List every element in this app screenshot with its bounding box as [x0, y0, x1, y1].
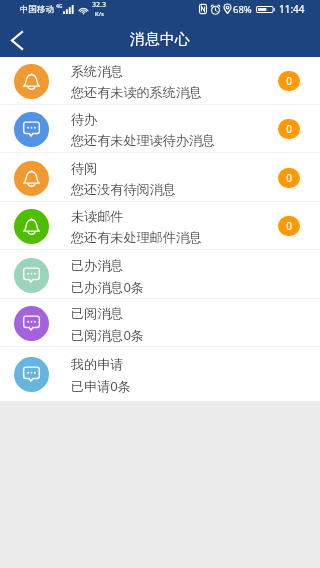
- button[interactable]: 待阅: [0, 154, 320, 202]
- staticText: 您还有未处理邮件消息: [71, 229, 202, 246]
- staticText: 系统消息: [71, 63, 124, 80]
- staticText: 11:44: [279, 2, 305, 16]
- staticText: 您还没有待阅消息: [71, 181, 176, 198]
- staticText: 未读邮件: [71, 208, 124, 225]
- staticText: 已申请0条: [71, 377, 131, 395]
- staticText: 0: [286, 219, 292, 233]
- staticText: 68%: [233, 3, 252, 16]
- button[interactable]: 已办消息: [0, 251, 320, 299]
- staticText: 待办: [71, 111, 98, 128]
- staticText: 已阅消息0条: [71, 326, 144, 344]
- staticText: 32.3: [92, 0, 106, 10]
- staticText: 您还有未处理读待办消息: [71, 132, 216, 149]
- button[interactable]: 系统消息: [0, 57, 320, 105]
- button[interactable]: 未读邮件: [0, 202, 320, 250]
- staticText: 0: [286, 171, 292, 185]
- button[interactable]: 已阅消息: [0, 299, 320, 347]
- staticText: 已办消息: [71, 257, 124, 274]
- button[interactable]: 待办: [0, 105, 320, 153]
- staticText: 0: [286, 122, 292, 136]
- button[interactable]: 我的申请: [0, 348, 320, 401]
- button[interactable]: Back: [0, 23, 34, 57]
- staticText: 中国移动: [20, 4, 54, 15]
- staticText: 0: [286, 74, 292, 88]
- staticText: K/s: [95, 10, 104, 18]
- staticText: 已办消息0条: [71, 278, 144, 296]
- staticText: 已阅消息: [71, 305, 124, 322]
- staticText: 待阅: [71, 160, 98, 177]
- staticText: 消息中心: [130, 30, 190, 49]
- staticText: 我的申请: [71, 356, 124, 373]
- staticText: 4G: [56, 3, 63, 10]
- staticText: 您还有未读的系统消息: [71, 84, 202, 101]
